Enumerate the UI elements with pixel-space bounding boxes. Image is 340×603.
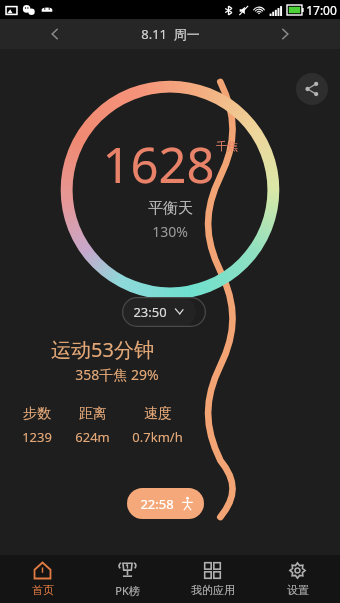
button[interactable]: 设置 <box>255 555 340 603</box>
staticText: PK榜 <box>115 583 140 598</box>
staticText: 1628 <box>102 131 215 198</box>
staticText: 17:00 <box>306 2 337 18</box>
button[interactable]: Share <box>296 73 328 105</box>
button[interactable]: Next day <box>272 21 298 47</box>
staticText: 步数 <box>23 405 51 423</box>
staticText: 我的应用 <box>191 583 235 597</box>
button[interactable]: 首页 <box>0 555 85 603</box>
staticText: 运动53分钟 <box>51 336 154 363</box>
staticText: 23:50 <box>133 303 167 321</box>
button[interactable]: 我的应用 <box>170 555 255 603</box>
staticText: 设置 <box>287 583 309 597</box>
button[interactable]: PK榜 <box>85 555 170 603</box>
staticText: 1239 <box>22 428 52 446</box>
staticText: 624m <box>75 428 110 446</box>
staticText: 130% <box>152 222 188 241</box>
button[interactable]: Previous day <box>42 21 68 47</box>
staticText: 22:58 <box>140 495 174 513</box>
staticText: 速度 <box>144 405 172 423</box>
button[interactable]: 22:58 <box>127 488 204 519</box>
staticText: 千焦 <box>216 139 238 153</box>
staticText: 首页 <box>32 583 54 597</box>
staticText: 平衡天 <box>148 199 193 218</box>
button[interactable]: 23:50 <box>122 297 196 327</box>
staticText: 0.7km/h <box>132 428 183 446</box>
staticText: 358千焦 29% <box>75 365 159 384</box>
staticText: 距离 <box>79 405 107 423</box>
staticText: 8.11 周一 <box>141 25 200 43</box>
